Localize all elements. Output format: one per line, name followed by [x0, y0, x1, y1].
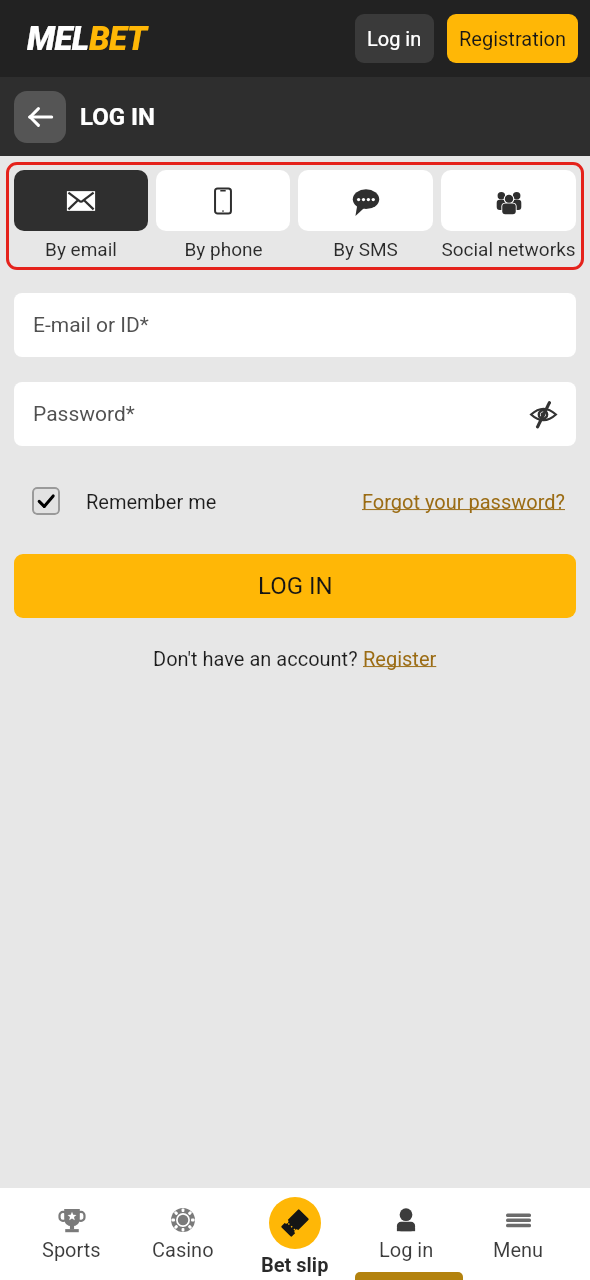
staticText: Log in	[379, 1238, 434, 1261]
button[interactable]: Casino	[127, 1188, 238, 1261]
button[interactable]: Registration	[447, 14, 578, 63]
button[interactable]: Log in	[350, 1188, 462, 1261]
button[interactable]: LOG IN	[14, 554, 576, 618]
button[interactable]: Show password	[528, 399, 558, 429]
button[interactable]: Forgot your password?	[362, 490, 565, 513]
staticText: BET	[89, 19, 147, 58]
button[interactable]: Password*	[14, 382, 576, 446]
staticText: Forgot your password?	[362, 490, 565, 513]
staticText: Casino	[152, 1238, 214, 1261]
button[interactable]: E-mail or ID*	[14, 293, 576, 357]
staticText: Sports	[42, 1238, 101, 1261]
staticText: By phone	[184, 238, 263, 260]
button[interactable]: Bet slip	[261, 1197, 329, 1276]
button[interactable]: By email	[14, 170, 148, 260]
staticText: E-mail or ID*	[33, 313, 149, 338]
button[interactable]: By SMS	[298, 170, 433, 260]
button[interactable]: Sports	[16, 1188, 127, 1261]
button[interactable]: MEL	[27, 19, 147, 58]
staticText: LOG IN	[80, 103, 156, 131]
staticText: By email	[45, 238, 117, 260]
button[interactable]: Back	[14, 91, 66, 143]
button[interactable]: Social networks	[441, 170, 576, 260]
button[interactable]: Register	[363, 647, 437, 670]
staticText: Remember me	[86, 490, 217, 513]
staticText: Register	[363, 647, 437, 670]
staticText: Password*	[33, 402, 135, 427]
staticText: Registration	[459, 27, 567, 50]
staticText: By SMS	[333, 238, 398, 260]
staticText: Don't have an account?	[153, 647, 363, 670]
staticText: Log in	[367, 27, 422, 50]
button[interactable]: Remember me	[32, 487, 217, 515]
button[interactable]: Log in	[355, 14, 434, 63]
staticText: Menu	[493, 1238, 544, 1261]
button[interactable]: Menu	[462, 1188, 574, 1261]
button[interactable]: By phone	[156, 170, 290, 260]
staticText: LOG IN	[258, 572, 333, 600]
staticText: Social networks	[441, 238, 576, 260]
staticText: Bet slip	[261, 1253, 329, 1276]
staticText: MEL	[27, 19, 89, 58]
